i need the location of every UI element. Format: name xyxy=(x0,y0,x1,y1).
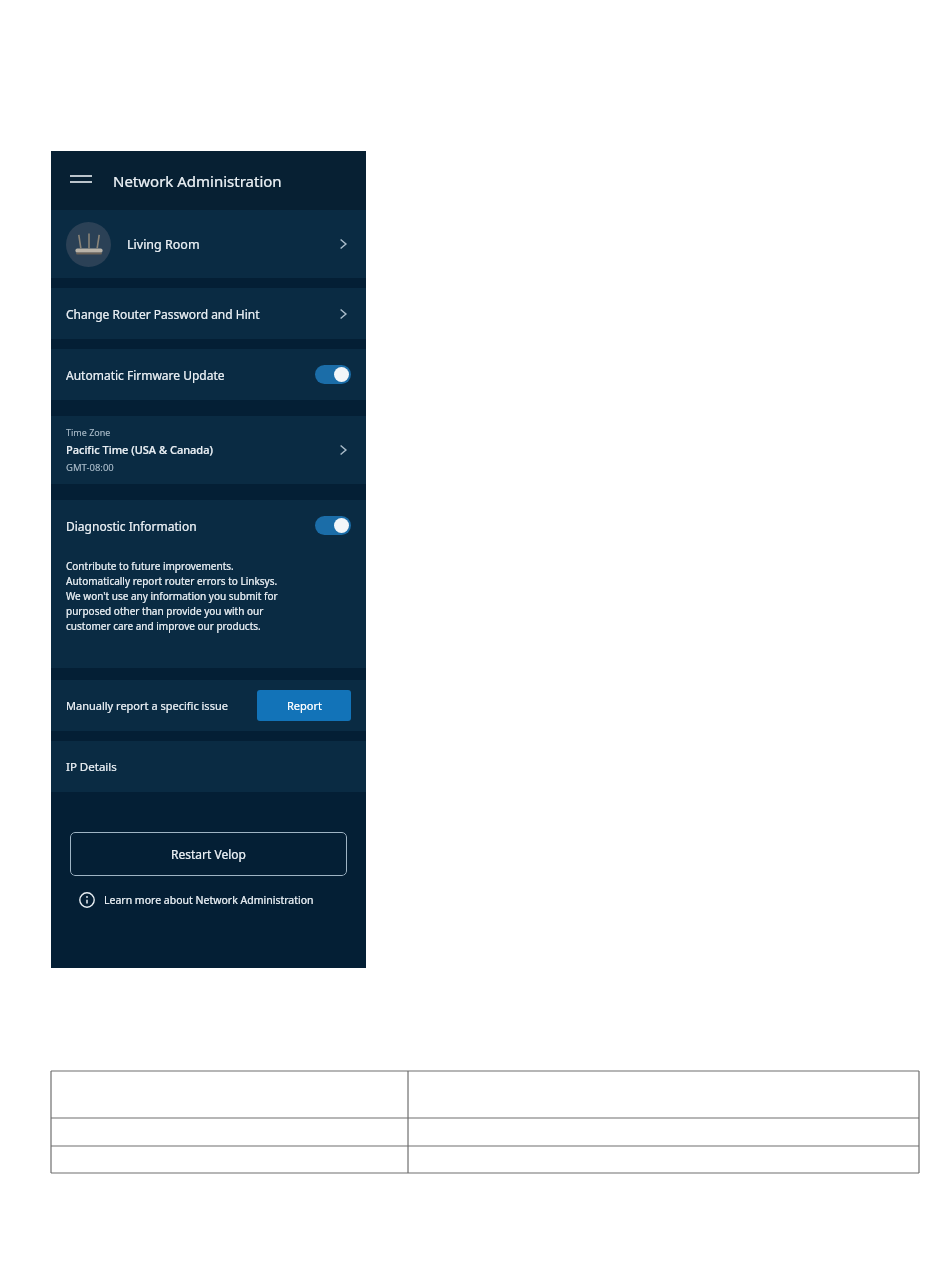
button[interactable]: Open navigation menu xyxy=(66,166,96,196)
button[interactable]: Learn more about Network Administration xyxy=(70,892,347,908)
staticText: Restart Velop xyxy=(171,846,246,862)
button[interactable]: Automatic Firmware Update xyxy=(51,349,366,400)
button[interactable]: Change Router Password and Hint xyxy=(51,288,366,339)
staticText: Living Room xyxy=(127,236,200,253)
button[interactable]: Report xyxy=(257,690,351,721)
staticText: Diagnostic Information xyxy=(66,518,197,534)
staticText: Network Administration xyxy=(113,171,282,191)
button[interactable]: IP Details xyxy=(51,741,366,792)
staticText: Pacific Time (USA & Canada) xyxy=(66,442,213,457)
staticText: IP Details xyxy=(66,759,117,775)
staticText: Report xyxy=(287,698,322,713)
staticText: Automatic Firmware Update xyxy=(66,367,225,383)
button[interactable]: Diagnostic Information xyxy=(51,500,366,551)
button[interactable]: Time Zone xyxy=(51,416,366,484)
button[interactable]: Living Room xyxy=(51,210,366,278)
staticText: Manually report a specific issue xyxy=(66,698,228,713)
staticText: GMT-08:00 xyxy=(66,461,114,474)
button[interactable]: Diagnostic Information on xyxy=(315,516,351,535)
staticText: Learn more about Network Administration xyxy=(104,893,314,907)
button[interactable]: Automatic Firmware Update on xyxy=(315,365,351,384)
staticText: Change Router Password and Hint xyxy=(66,306,260,322)
button[interactable]: Restart Velop xyxy=(70,832,347,876)
staticText: Time Zone xyxy=(66,426,111,438)
staticText: Contribute to future improvements. Autom… xyxy=(66,559,278,633)
